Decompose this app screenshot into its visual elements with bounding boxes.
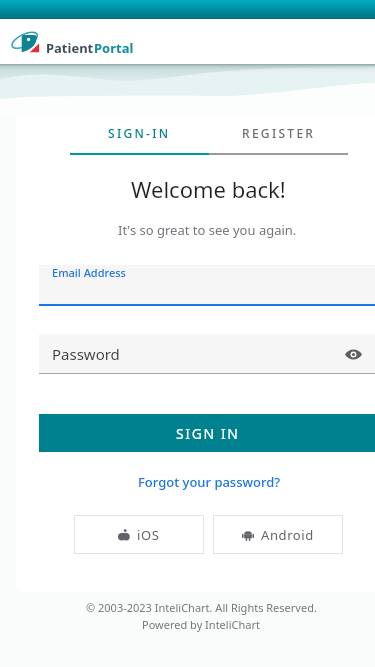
- button[interactable]: iOS: [74, 515, 204, 554]
- button[interactable]: SIGN-IN: [70, 125, 209, 155]
- staticText: Email Address: [52, 265, 126, 280]
- staticText: Patient: [46, 39, 94, 57]
- staticText: Portal: [94, 39, 134, 57]
- staticText: SIGN IN: [176, 424, 240, 443]
- staticText: iOS: [137, 526, 160, 544]
- button[interactable]: REGISTER: [209, 125, 348, 155]
- button[interactable]: Android: [213, 515, 343, 554]
- staticText: REGISTER: [242, 125, 316, 141]
- button[interactable]: Show password: [340, 341, 366, 367]
- button[interactable]: Password: [39, 334, 375, 373]
- button[interactable]: Email Address: [39, 265, 375, 304]
- staticText: SIGN-IN: [108, 125, 171, 141]
- staticText: Powered by InteliChart: [142, 617, 260, 632]
- staticText: It's so great to see you again.: [118, 221, 297, 239]
- staticText: © 2003-2023 InteliChart. All Rights Rese…: [86, 600, 317, 615]
- staticText: Welcome back!: [131, 174, 286, 204]
- staticText: Password: [52, 344, 120, 364]
- staticText: Android: [261, 526, 314, 544]
- button[interactable]: Forgot your password?: [138, 473, 281, 491]
- button[interactable]: SIGN IN: [39, 414, 375, 452]
